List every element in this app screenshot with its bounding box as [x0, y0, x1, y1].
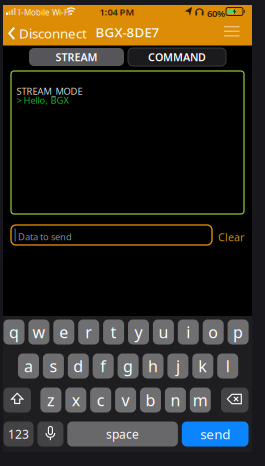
button[interactable]: h: [142, 353, 163, 378]
button[interactable]: STREAM: [29, 48, 124, 66]
staticText: s: [49, 355, 57, 377]
staticText: Disconnect: [19, 24, 87, 42]
button[interactable]: [37, 421, 63, 446]
staticText: k: [198, 355, 207, 377]
staticText: Clear: [218, 230, 244, 244]
staticText: w: [32, 321, 45, 343]
button[interactable]: z: [40, 387, 61, 412]
staticText: m: [193, 389, 208, 411]
staticText: z: [47, 389, 55, 411]
button[interactable]: Disconnect: [8, 24, 87, 42]
button[interactable]: w: [28, 319, 49, 344]
button[interactable]: [221, 387, 248, 412]
button[interactable]: d: [68, 353, 89, 378]
button[interactable]: y: [128, 319, 149, 344]
staticText: v: [122, 389, 130, 411]
button[interactable]: u: [153, 319, 174, 344]
staticText: send: [200, 425, 230, 443]
button[interactable]: c: [90, 387, 111, 412]
staticText: j: [176, 355, 180, 377]
staticText: c: [97, 389, 105, 411]
staticText: > Hello, BGX: [16, 94, 68, 106]
staticText: i: [186, 321, 190, 343]
staticText: o: [208, 321, 218, 343]
staticText: f: [100, 355, 106, 377]
staticText: b: [145, 389, 155, 411]
staticText: 123: [8, 426, 29, 442]
button[interactable]: b: [140, 387, 161, 412]
button[interactable]: [3, 387, 31, 412]
button[interactable]: j: [167, 353, 188, 378]
button[interactable]: x: [65, 387, 86, 412]
button[interactable]: [11, 225, 212, 245]
staticText: t: [111, 321, 117, 343]
staticText: a: [24, 355, 33, 377]
staticText: space: [106, 426, 139, 442]
button[interactable]: send: [182, 421, 248, 446]
staticText: Data to send: [18, 230, 72, 243]
staticText: q: [9, 321, 19, 343]
staticText: d: [73, 355, 83, 377]
staticText: y: [134, 321, 142, 343]
staticText: 60%: [207, 7, 225, 20]
button[interactable]: s: [43, 353, 64, 378]
button[interactable]: v: [115, 387, 136, 412]
staticText: h: [148, 355, 158, 377]
button[interactable]: m: [190, 387, 211, 412]
button[interactable]: Clear: [218, 230, 244, 244]
button[interactable]: t: [103, 319, 124, 344]
staticText: n: [170, 389, 180, 411]
staticText: l: [226, 355, 230, 377]
button[interactable]: 123: [3, 421, 33, 446]
button[interactable]: f: [93, 353, 114, 378]
staticText: T-Mobile Wi-Fi: [17, 7, 70, 18]
staticText: STREAM_MODE: [16, 85, 82, 97]
button[interactable]: space: [67, 421, 178, 446]
button[interactable]: p: [228, 319, 249, 344]
staticText: u: [158, 321, 168, 343]
button[interactable]: g: [118, 353, 139, 378]
button[interactable]: COMMAND: [128, 48, 226, 66]
staticText: g: [123, 355, 133, 377]
button[interactable]: l: [217, 353, 238, 378]
staticText: p: [233, 321, 243, 343]
button[interactable]: k: [192, 353, 213, 378]
button[interactable]: n: [165, 387, 186, 412]
button[interactable]: [224, 25, 239, 38]
staticText: x: [72, 389, 80, 411]
staticText: r: [85, 321, 92, 343]
staticText: STREAM: [55, 50, 97, 64]
button[interactable]: e: [53, 319, 74, 344]
button[interactable]: a: [18, 353, 39, 378]
button[interactable]: i: [178, 319, 199, 344]
staticText: BGX-8DE7: [95, 23, 159, 41]
staticText: e: [59, 321, 68, 343]
staticText: COMMAND: [148, 50, 206, 64]
button[interactable]: q: [3, 319, 24, 344]
button[interactable]: o: [203, 319, 224, 344]
button[interactable]: r: [78, 319, 99, 344]
staticText: 1:04 PM: [99, 6, 134, 18]
